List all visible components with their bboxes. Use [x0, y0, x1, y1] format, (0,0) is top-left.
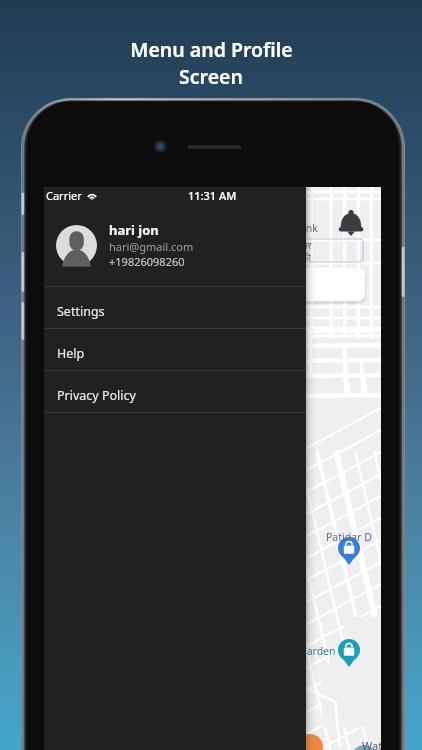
staticText: hari jon: [109, 221, 159, 239]
staticText: Help: [57, 345, 85, 362]
staticText: +19826098260: [109, 254, 185, 269]
staticText: r tank: [289, 221, 318, 235]
staticText: ी टंकी: [287, 251, 311, 263]
staticText: 11:31 AM: [188, 188, 237, 203]
staticText: Garden: [299, 644, 336, 658]
staticText: दुर नगर: [287, 239, 312, 251]
staticText: Carrier: [46, 188, 82, 203]
button[interactable]: Privacy Policy: [44, 371, 306, 412]
staticText: Wat: [362, 738, 381, 750]
button[interactable]: Help: [44, 329, 306, 370]
staticText: Privacy Policy: [57, 387, 136, 404]
staticText: Screen: [179, 63, 243, 90]
button[interactable]: hari jon: [44, 204, 306, 286]
staticText: hari@gmail.com: [109, 239, 194, 254]
staticText: Menu and Profile: [130, 36, 293, 63]
staticText: Patidar D: [326, 530, 372, 544]
staticText: Settings: [57, 303, 105, 320]
button[interactable]: Settings: [44, 287, 306, 328]
